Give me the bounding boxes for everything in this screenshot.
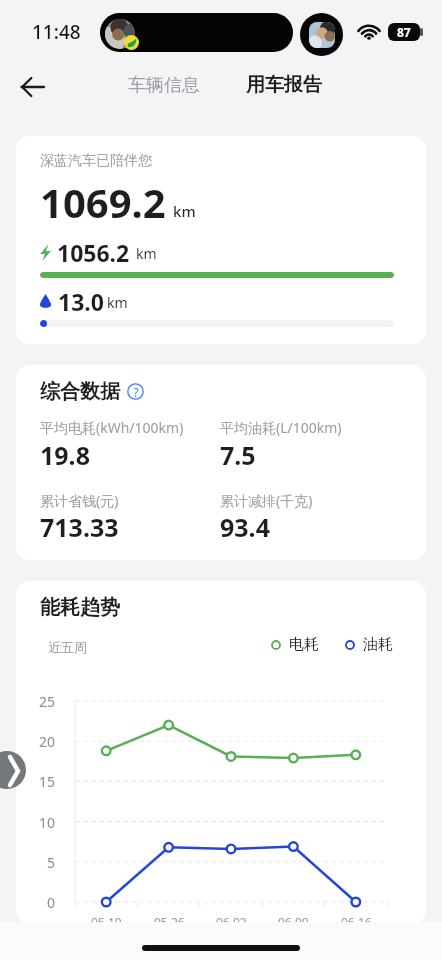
staticText: 06.16 xyxy=(341,914,372,924)
button[interactable]: 综合数据 xyxy=(16,365,426,560)
staticText: 累计省钱(元) xyxy=(40,491,119,510)
staticText: 7.5 xyxy=(220,438,256,472)
staticText: 06.02 xyxy=(216,914,247,924)
button[interactable]: 用车报告 xyxy=(236,67,332,103)
staticText: 713.33 xyxy=(40,510,119,544)
staticText: 93.4 xyxy=(220,510,270,544)
staticText: 近五周 xyxy=(48,639,87,655)
staticText: 用车报告 xyxy=(246,73,322,97)
staticText: 06.09 xyxy=(278,914,309,924)
staticText: 87 xyxy=(397,24,411,40)
staticText: 0 xyxy=(47,893,56,911)
staticText: km xyxy=(136,244,157,263)
staticText: 19.8 xyxy=(40,438,90,472)
staticText: 25 xyxy=(39,692,56,710)
button[interactable]: Expand side panel xyxy=(0,751,26,789)
staticText: 平均电耗(kWh/100km) xyxy=(40,418,184,437)
staticText: 1056.2 xyxy=(57,237,130,268)
staticText: 15 xyxy=(39,772,56,790)
staticText: km xyxy=(107,293,128,312)
staticText: 10 xyxy=(39,813,56,831)
button[interactable]: 车辆信息 xyxy=(118,68,210,103)
staticText: 20 xyxy=(39,732,56,750)
staticText: 05.19 xyxy=(91,914,122,924)
staticText: 1069.2 xyxy=(40,175,166,229)
staticText: km xyxy=(173,201,196,221)
staticText: 累计减排(千克) xyxy=(220,491,313,510)
staticText: ? xyxy=(133,384,139,400)
button[interactable]: 油耗 xyxy=(345,635,393,654)
staticText: 05.26 xyxy=(154,914,185,924)
staticText: 13.0 xyxy=(58,286,104,317)
staticText: 5 xyxy=(47,853,56,871)
staticText: 11:48 xyxy=(32,19,81,45)
staticText: 深蓝汽车已陪伴您 xyxy=(40,152,152,170)
staticText: 车辆信息 xyxy=(128,74,200,97)
button[interactable]: Data explanation xyxy=(127,383,144,400)
button[interactable]: 电耗 xyxy=(271,635,319,654)
button[interactable]: Back xyxy=(11,66,53,108)
button[interactable]: 深蓝汽车已陪伴您 xyxy=(16,136,426,344)
staticText: 能耗趋势 xyxy=(40,595,120,620)
staticText: 综合数据 xyxy=(40,379,120,404)
staticText: 电耗 xyxy=(289,635,319,654)
staticText: 油耗 xyxy=(363,635,393,654)
staticText: 平均油耗(L/100km) xyxy=(220,418,342,437)
